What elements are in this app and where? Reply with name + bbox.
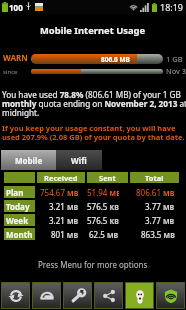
staticText: 51.94 MB: [87, 187, 119, 198]
staticText: Nov 3: [166, 66, 186, 76]
staticText: 62.5 MB: [89, 229, 119, 240]
button[interactable]: Wifi: [56, 150, 102, 170]
staticText: Sent: [99, 173, 116, 183]
staticText: 801 MB: [51, 229, 79, 240]
staticText: Total: [145, 173, 164, 183]
staticText: If you keep your usage constant, you wil…: [2, 123, 186, 142]
staticText: WARN: [3, 52, 28, 63]
staticText: 576.5 KB: [87, 215, 119, 226]
button[interactable]: Refresh: [2, 283, 29, 308]
button[interactable]: Plan: [4, 186, 35, 198]
staticText: 100: [9, 2, 23, 13]
button[interactable]: Week: [4, 214, 35, 226]
staticText: 3.77 MB: [145, 215, 175, 226]
staticText: 576.5 KB: [87, 201, 119, 212]
staticText: You have used 78.8% (806.61 MB) of your …: [2, 89, 186, 119]
staticText: 3.21 MB: [49, 215, 79, 226]
button[interactable]: Today: [4, 200, 35, 212]
staticText: 806.6 MB: [101, 55, 130, 64]
staticText: 1 GB: [166, 54, 183, 64]
staticText: Wifi: [71, 155, 87, 166]
staticText: 3.77 MB: [145, 201, 175, 212]
staticText: 18:19: [160, 1, 184, 13]
button[interactable]: Mobile: [1, 150, 56, 170]
staticText: Plan: [6, 187, 24, 198]
staticText: Press Menu for more options: [38, 259, 148, 270]
staticText: Month: [6, 229, 33, 240]
staticText: since: [3, 68, 18, 76]
staticText: 806.61 MB: [136, 187, 175, 198]
staticText: Today: [6, 201, 30, 212]
button[interactable]: Share: [95, 283, 122, 308]
staticText: 754.67 MB: [40, 187, 79, 198]
button[interactable]: Month: [4, 228, 35, 240]
button[interactable]: About: [126, 283, 153, 308]
staticText: Week: [6, 215, 29, 226]
button[interactable]: Settings: [64, 283, 91, 308]
button[interactable]: Wifi protection: [157, 283, 184, 308]
staticText: Mobile Internet Usage: [40, 24, 146, 37]
staticText: 863.5 MB: [141, 229, 175, 240]
staticText: Mobile: [15, 155, 43, 166]
button[interactable]: Speed test: [33, 283, 60, 308]
staticText: 3.21 MB: [49, 201, 79, 212]
staticText: Received: [44, 173, 78, 183]
